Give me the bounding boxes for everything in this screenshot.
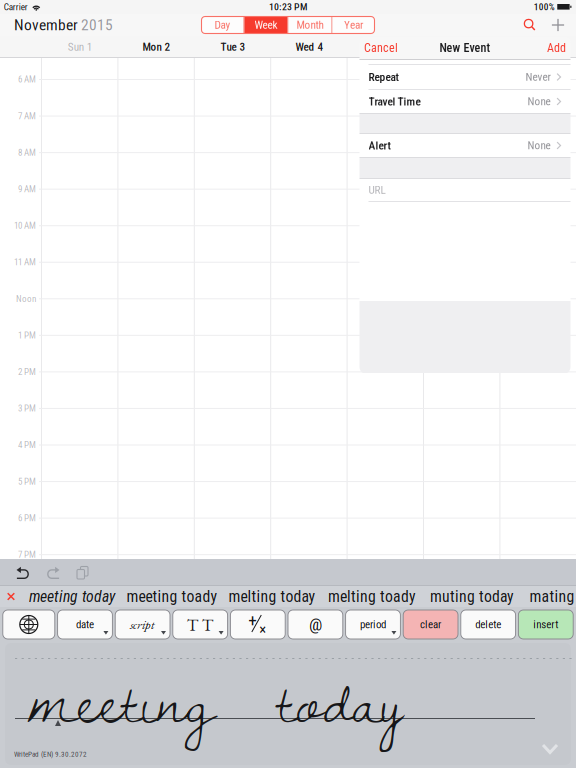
staticText: Add [547,41,566,55]
staticText: + [248,610,257,630]
button[interactable]: date [58,610,112,639]
button[interactable]: clear [403,610,458,639]
staticText: 100% [534,1,555,12]
staticText: 10:23 PM [269,1,307,13]
staticText: meeting toady [126,587,217,606]
staticText: 11 AM [14,257,36,267]
button[interactable]: Travel Time [359,90,570,113]
staticText: Carrier [4,2,28,12]
button[interactable]: Undo [11,563,35,583]
button[interactable]: muting today [422,586,522,607]
staticText: Noon [16,293,36,304]
staticText: Tue 3 [220,40,245,53]
button[interactable]: Week [244,16,287,33]
staticText: 7 AM [18,111,36,121]
staticText: Month [296,18,323,31]
staticText: None [527,95,550,108]
staticText: T T [187,613,214,636]
button[interactable]: @ [288,610,343,639]
staticText: clear [420,618,441,631]
staticText: None [527,139,550,152]
button[interactable]: melting today [222,586,322,607]
staticText: 9 AM [18,184,36,194]
staticText: insert [533,618,558,631]
staticText: muting today [430,587,514,606]
staticText: Alert [368,139,390,152]
staticText: Never [525,70,550,83]
staticText: Day [214,18,230,31]
button[interactable]: Redo [41,563,65,583]
staticText: @ [309,614,322,635]
button[interactable]: Cancel [364,41,398,55]
button[interactable]: Hide keyboard [536,738,564,760]
staticText: Year [344,18,363,31]
staticText: × [259,621,266,638]
staticText: November [14,16,78,34]
button[interactable]: Search [524,19,536,31]
staticText: meeting today [28,641,403,757]
staticText: date [76,618,94,631]
button[interactable] [3,610,55,639]
staticText: Repeat [368,70,398,84]
button[interactable]: + [230,610,285,639]
staticText: Cancel [364,41,398,55]
staticText: 3 PM [18,403,36,414]
staticText: meeting today [29,587,115,606]
staticText: Week [254,18,277,31]
staticText: 1 PM [18,330,36,341]
button[interactable]: Add [547,41,566,55]
staticText: Wed 4 [295,40,323,53]
button[interactable]: Day [201,16,243,33]
staticText: delete [475,618,501,631]
staticText: 10 AM [14,220,36,231]
button[interactable]: Paste [71,563,95,583]
staticText: 6 PM [18,513,36,523]
staticText: Mon 2 [143,40,171,53]
button[interactable]: Alert [359,134,570,157]
button[interactable]: meeting today [22,586,122,607]
staticText: period [360,618,386,631]
button[interactable]: melting toady [322,586,422,607]
button[interactable]: Month [288,16,331,33]
staticText: Fri 6 [452,40,473,53]
button[interactable]: T T [173,610,228,639]
button[interactable]: Year [332,16,374,33]
button[interactable]: insert [518,610,573,639]
staticText: 2 PM [18,367,36,377]
staticText: script [130,616,155,633]
staticText: Travel Time [368,95,420,108]
staticText: 8 AM [18,147,36,158]
staticText: mating [529,587,574,606]
staticText: Sun 1 [68,40,93,53]
button[interactable]: period [346,610,400,639]
staticText: melting today [228,587,315,606]
staticText: Sat 7 [527,40,550,53]
staticText: WritePad (EN) 9.30.2072 [14,750,87,758]
staticText: 2015 [81,16,113,34]
button[interactable]: delete [461,610,516,639]
button[interactable]: mating [522,586,576,607]
staticText: 4 PM [18,440,36,450]
button[interactable]: Repeat [359,65,570,89]
staticText: 6 AM [18,74,36,85]
staticText: Thu 5 [373,40,398,53]
staticText: URL [368,183,385,196]
button[interactable]: meeting toady [122,586,222,607]
button[interactable]: script [115,610,170,639]
staticText: New Event [439,41,490,55]
button[interactable]: Dismiss suggestions [0,586,22,607]
staticText: 7 PM [18,549,36,560]
button[interactable]: New Event [551,18,564,31]
staticText: 5 PM [18,476,36,487]
staticText: melting toady [328,587,416,606]
